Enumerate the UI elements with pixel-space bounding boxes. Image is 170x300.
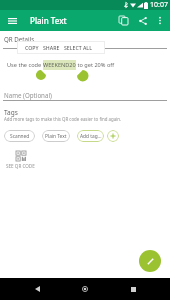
staticText: WEEKEND20 — [43, 61, 76, 69]
staticText: Name (Optional) — [4, 91, 52, 99]
button[interactable]: Plain Text — [42, 130, 70, 142]
button[interactable]: Add tag — [107, 130, 119, 142]
button[interactable]: COPY — [25, 44, 39, 51]
staticText: QR Details — [4, 35, 35, 43]
staticText: Plain Text — [45, 133, 67, 140]
button[interactable]: Scanned — [4, 130, 35, 142]
button[interactable]: SHARE — [43, 44, 60, 51]
staticText: Use the code — [7, 61, 43, 69]
button[interactable]: Back — [26, 278, 48, 300]
button[interactable]: Edit — [139, 250, 161, 272]
button[interactable]: SEE QR CODE — [6, 151, 35, 169]
button[interactable]: Copy — [114, 10, 132, 31]
button[interactable]: Share — [134, 10, 152, 31]
button[interactable]: More options — [151, 10, 168, 31]
button[interactable]: Recent apps — [122, 278, 144, 300]
staticText: to get 20% off — [76, 61, 115, 69]
staticText: Plain Text — [30, 15, 67, 26]
staticText: SEE QR CODE — [6, 163, 35, 169]
staticText: Add tag... — [80, 133, 102, 140]
staticText: Tags — [4, 108, 18, 117]
staticText: Add more tags to make this QR code easie… — [4, 116, 122, 122]
button[interactable]: Home — [74, 278, 96, 300]
button[interactable]: SELECT ALL — [64, 44, 92, 51]
button[interactable]: Add tag... — [77, 130, 104, 142]
staticText: Scanned — [10, 133, 30, 140]
button[interactable]: Navigation menu — [4, 13, 20, 29]
staticText: 10:07 — [150, 0, 168, 10]
